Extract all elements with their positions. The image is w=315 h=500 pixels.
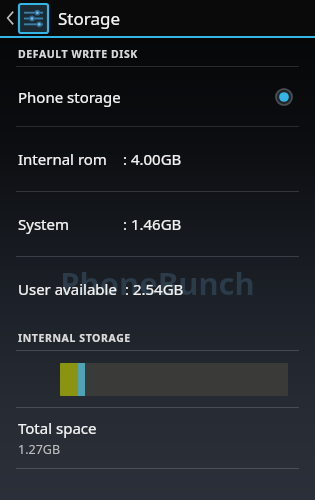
staticText: : 4.00GB [123, 149, 182, 169]
staticText: INTERNAL STORAGE [18, 331, 131, 345]
staticText: Internal rom [18, 149, 107, 169]
button[interactable]: Internal rom [0, 127, 315, 191]
staticText: System [18, 214, 69, 234]
staticText: : 1.46GB [123, 214, 182, 234]
staticText: Storage [58, 7, 121, 30]
button[interactable]: User available [0, 257, 315, 321]
staticText: 1.27GB [18, 441, 61, 458]
button[interactable]: Phone storage [0, 67, 315, 126]
staticText: User available [18, 279, 117, 299]
staticText: Total space [18, 418, 97, 438]
staticText: PhoneBunch [60, 262, 255, 304]
button[interactable]: Back to Storage [0, 0, 315, 36]
staticText: Phone storage [18, 87, 275, 107]
staticText: DEFAULT WRITE DISK [18, 47, 138, 61]
button[interactable]: System [0, 192, 315, 256]
button[interactable]: Total space [0, 408, 315, 468]
staticText: : 2.54GB [125, 279, 184, 299]
